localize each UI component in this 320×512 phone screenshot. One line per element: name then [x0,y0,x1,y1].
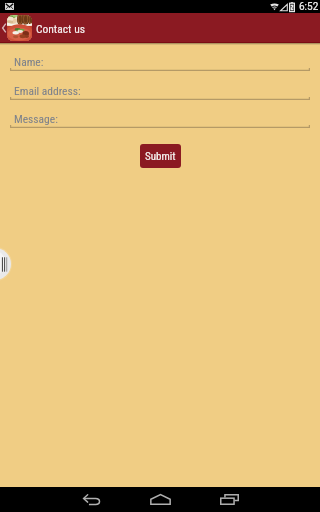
button[interactable]: Home [138,487,182,512]
button[interactable]: Submit [140,144,181,168]
staticText: Email address: [14,84,81,97]
button[interactable]: Navigate up [0,13,32,43]
staticText: 6:52 [299,1,319,13]
staticText: Contact us [36,22,85,35]
button[interactable]: Email address: [10,84,310,100]
staticText: Submit [145,150,176,163]
staticText: Name: [14,55,44,68]
button[interactable]: Message: [10,112,310,128]
button[interactable]: Back [70,487,114,512]
button[interactable]: Open navigation drawer [0,248,11,280]
button[interactable]: Name: [10,55,310,71]
button[interactable]: Recent apps [207,487,251,512]
staticText: Message: [14,112,58,125]
